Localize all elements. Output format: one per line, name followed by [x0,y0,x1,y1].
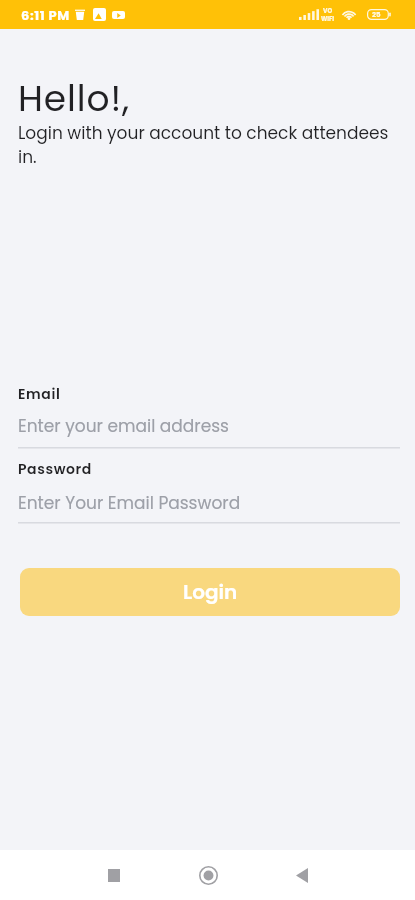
staticText: 6:11 PM [21,6,70,24]
staticText: 25 [372,10,381,20]
button[interactable]: Login [20,568,400,616]
staticText: Login with your account to check attende… [18,121,393,169]
staticText: Enter Your Email Password [18,491,241,515]
staticText: Hello!, [18,73,131,123]
staticText: VO [323,7,333,15]
staticText: Email [18,384,61,404]
button[interactable]: Recent apps [67,850,161,900]
button[interactable]: Back [255,850,349,900]
staticText: Enter your email address [18,414,229,438]
staticText: WiFi [321,15,335,23]
button[interactable]: Home [161,850,255,900]
staticText: Login [183,578,238,606]
staticText: Password [18,459,92,479]
